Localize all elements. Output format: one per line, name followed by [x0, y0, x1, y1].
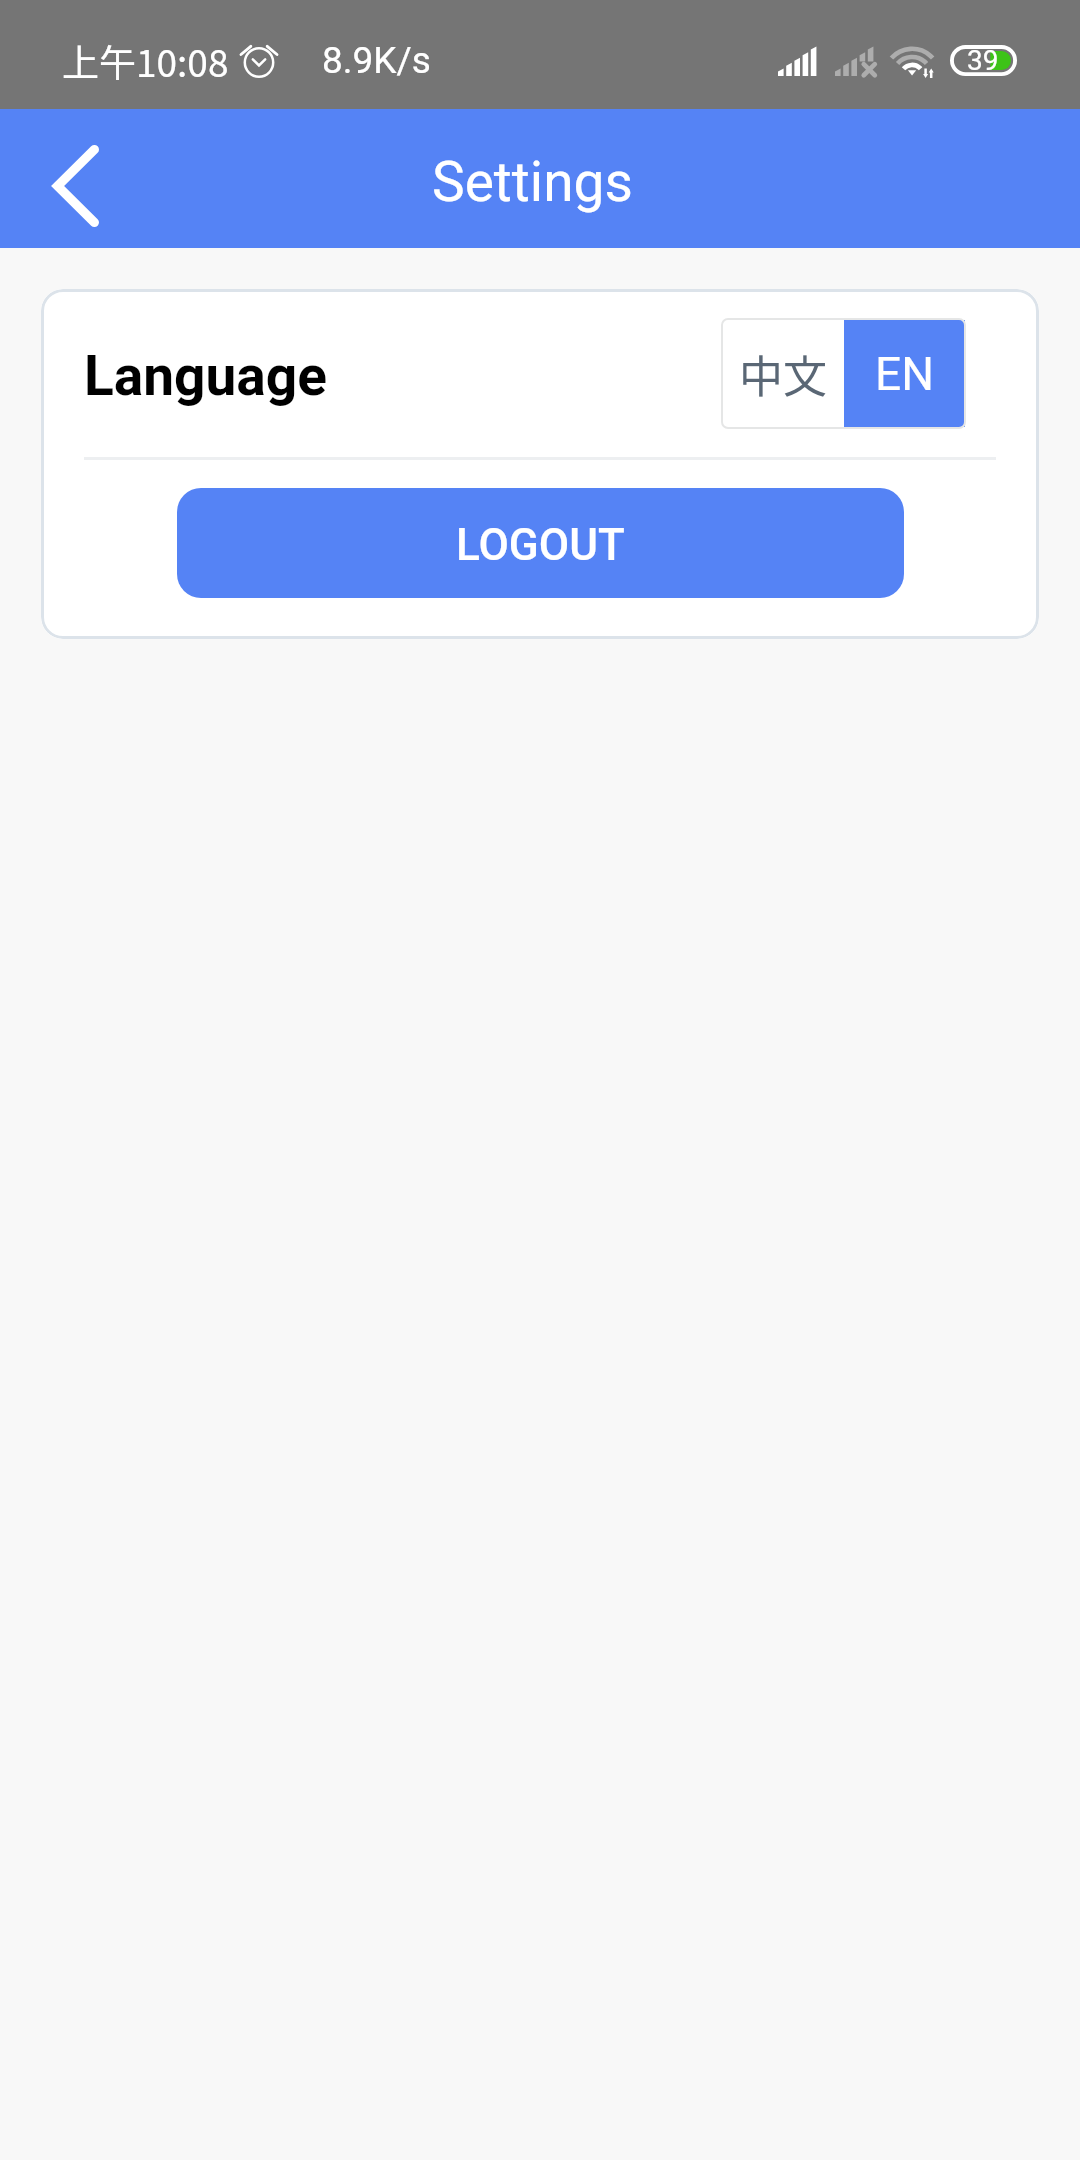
staticText: 中文: [739, 342, 827, 406]
staticText: Language: [84, 344, 327, 408]
staticText: EN: [875, 347, 934, 401]
button[interactable]: Back: [26, 129, 126, 229]
staticText: 39: [967, 44, 999, 75]
staticText: 8.9K/s: [322, 39, 431, 82]
staticText: 上午10:08: [62, 34, 229, 88]
button[interactable]: 中文: [721, 318, 844, 429]
button[interactable]: LOGOUT: [177, 488, 904, 598]
staticText: Settings: [432, 150, 633, 214]
staticText: LOGOUT: [456, 519, 625, 571]
button[interactable]: EN: [844, 320, 965, 427]
